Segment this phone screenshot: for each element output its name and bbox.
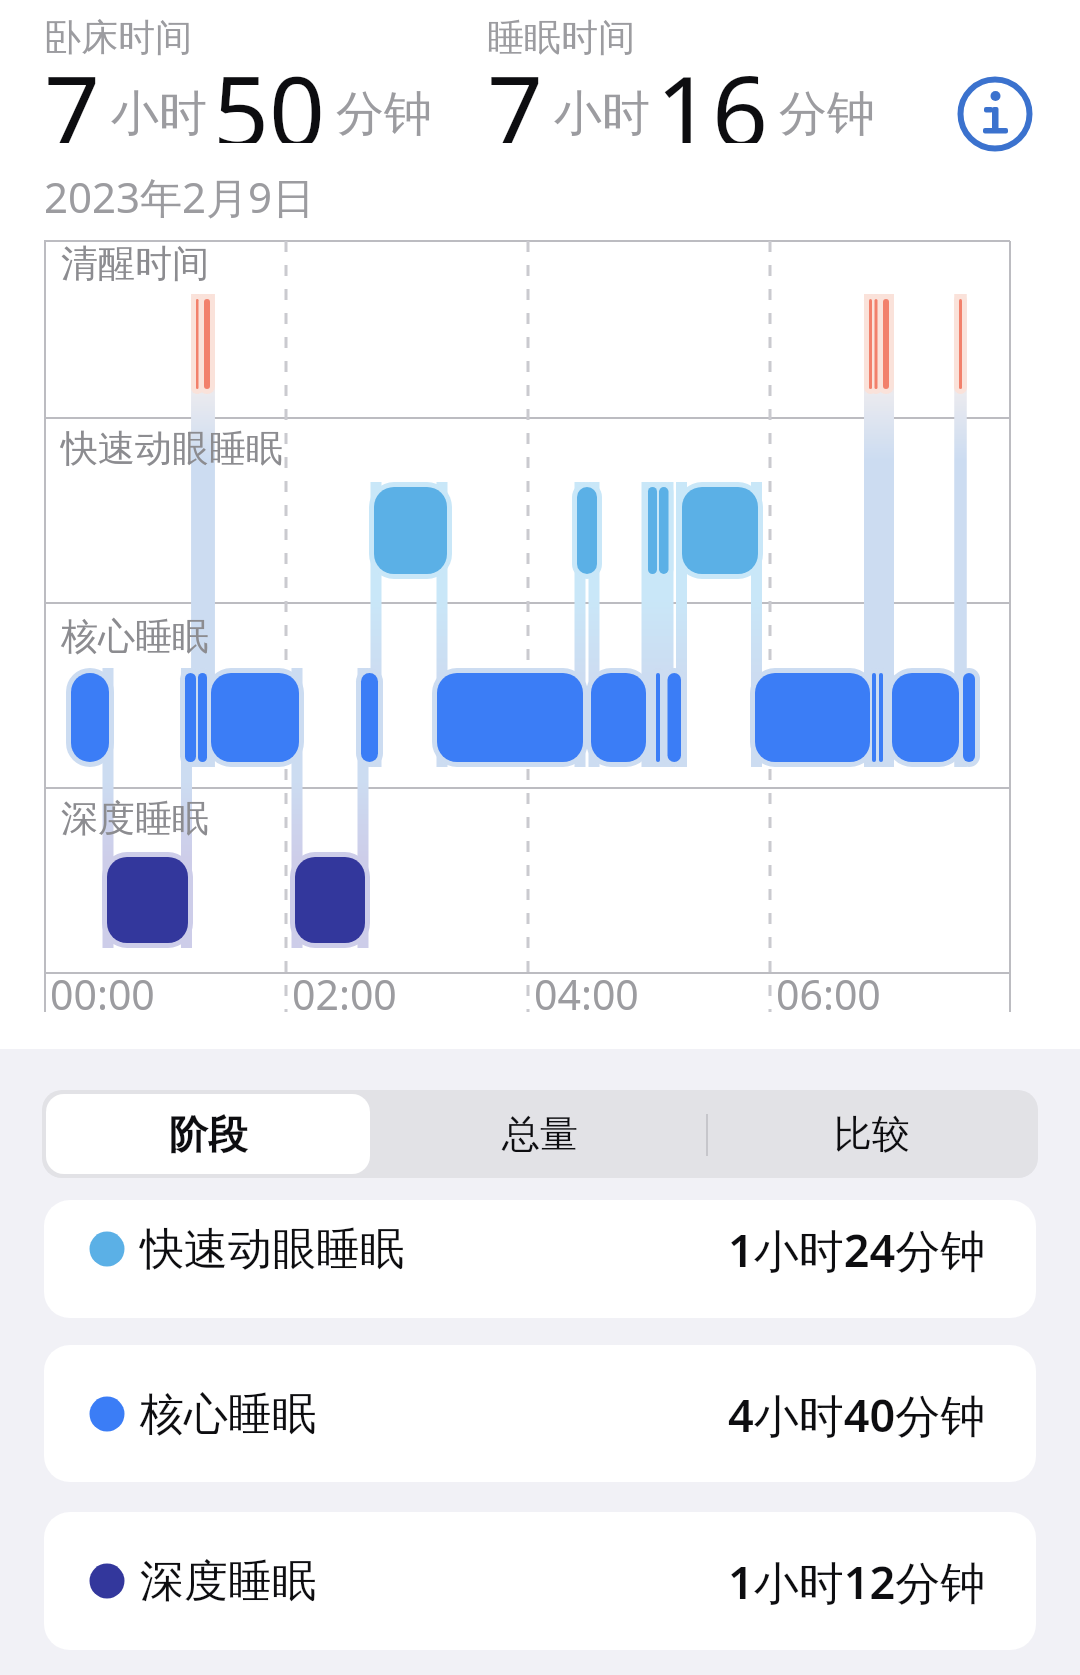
staticText: 1小时24分钟 — [728, 1219, 986, 1280]
staticText: 清醒时间 — [61, 240, 209, 287]
button[interactable]: 快速动眼睡眠 — [44, 1200, 1036, 1318]
staticText: 7 — [44, 43, 101, 143]
staticText: 分钟 — [336, 84, 432, 144]
staticText: 2023年2月9日 — [44, 168, 315, 225]
staticText: 核心睡眠 — [140, 1387, 316, 1442]
button[interactable]: 总量 — [374, 1094, 706, 1174]
button[interactable]: 比较 — [710, 1094, 1034, 1174]
staticText: 00:00 — [50, 966, 155, 1022]
staticText: 1小时12分钟 — [728, 1551, 986, 1612]
staticText: 16 — [656, 43, 769, 143]
staticText: 50 — [213, 43, 326, 143]
staticText: 深度睡眠 — [61, 795, 209, 842]
staticText: 核心睡眠 — [61, 613, 209, 660]
staticText: 快速动眼睡眠 — [140, 1222, 404, 1277]
staticText: 深度睡眠 — [140, 1554, 316, 1609]
staticText: 比较 — [834, 1110, 910, 1158]
staticText: 4小时40分钟 — [728, 1384, 986, 1445]
button[interactable]: 信息 — [956, 76, 1034, 154]
staticText: 04:00 — [534, 966, 639, 1022]
staticText: 卧床时间 — [44, 14, 192, 61]
staticText: 7 — [487, 43, 544, 143]
staticText: 总量 — [502, 1110, 578, 1158]
staticText: 小时 — [111, 84, 207, 144]
staticText: 02:00 — [292, 966, 397, 1022]
button[interactable]: 核心睡眠 — [44, 1345, 1036, 1482]
staticText: 阶段 — [169, 1110, 247, 1159]
staticText: 睡眠时间 — [487, 14, 635, 61]
staticText: 快速动眼睡眠 — [61, 425, 283, 472]
staticText: 06:00 — [776, 966, 881, 1022]
staticText: 分钟 — [779, 84, 875, 144]
staticText: 小时 — [554, 84, 650, 144]
button[interactable]: 深度睡眠 — [44, 1512, 1036, 1650]
button[interactable]: 阶段 — [46, 1094, 370, 1174]
